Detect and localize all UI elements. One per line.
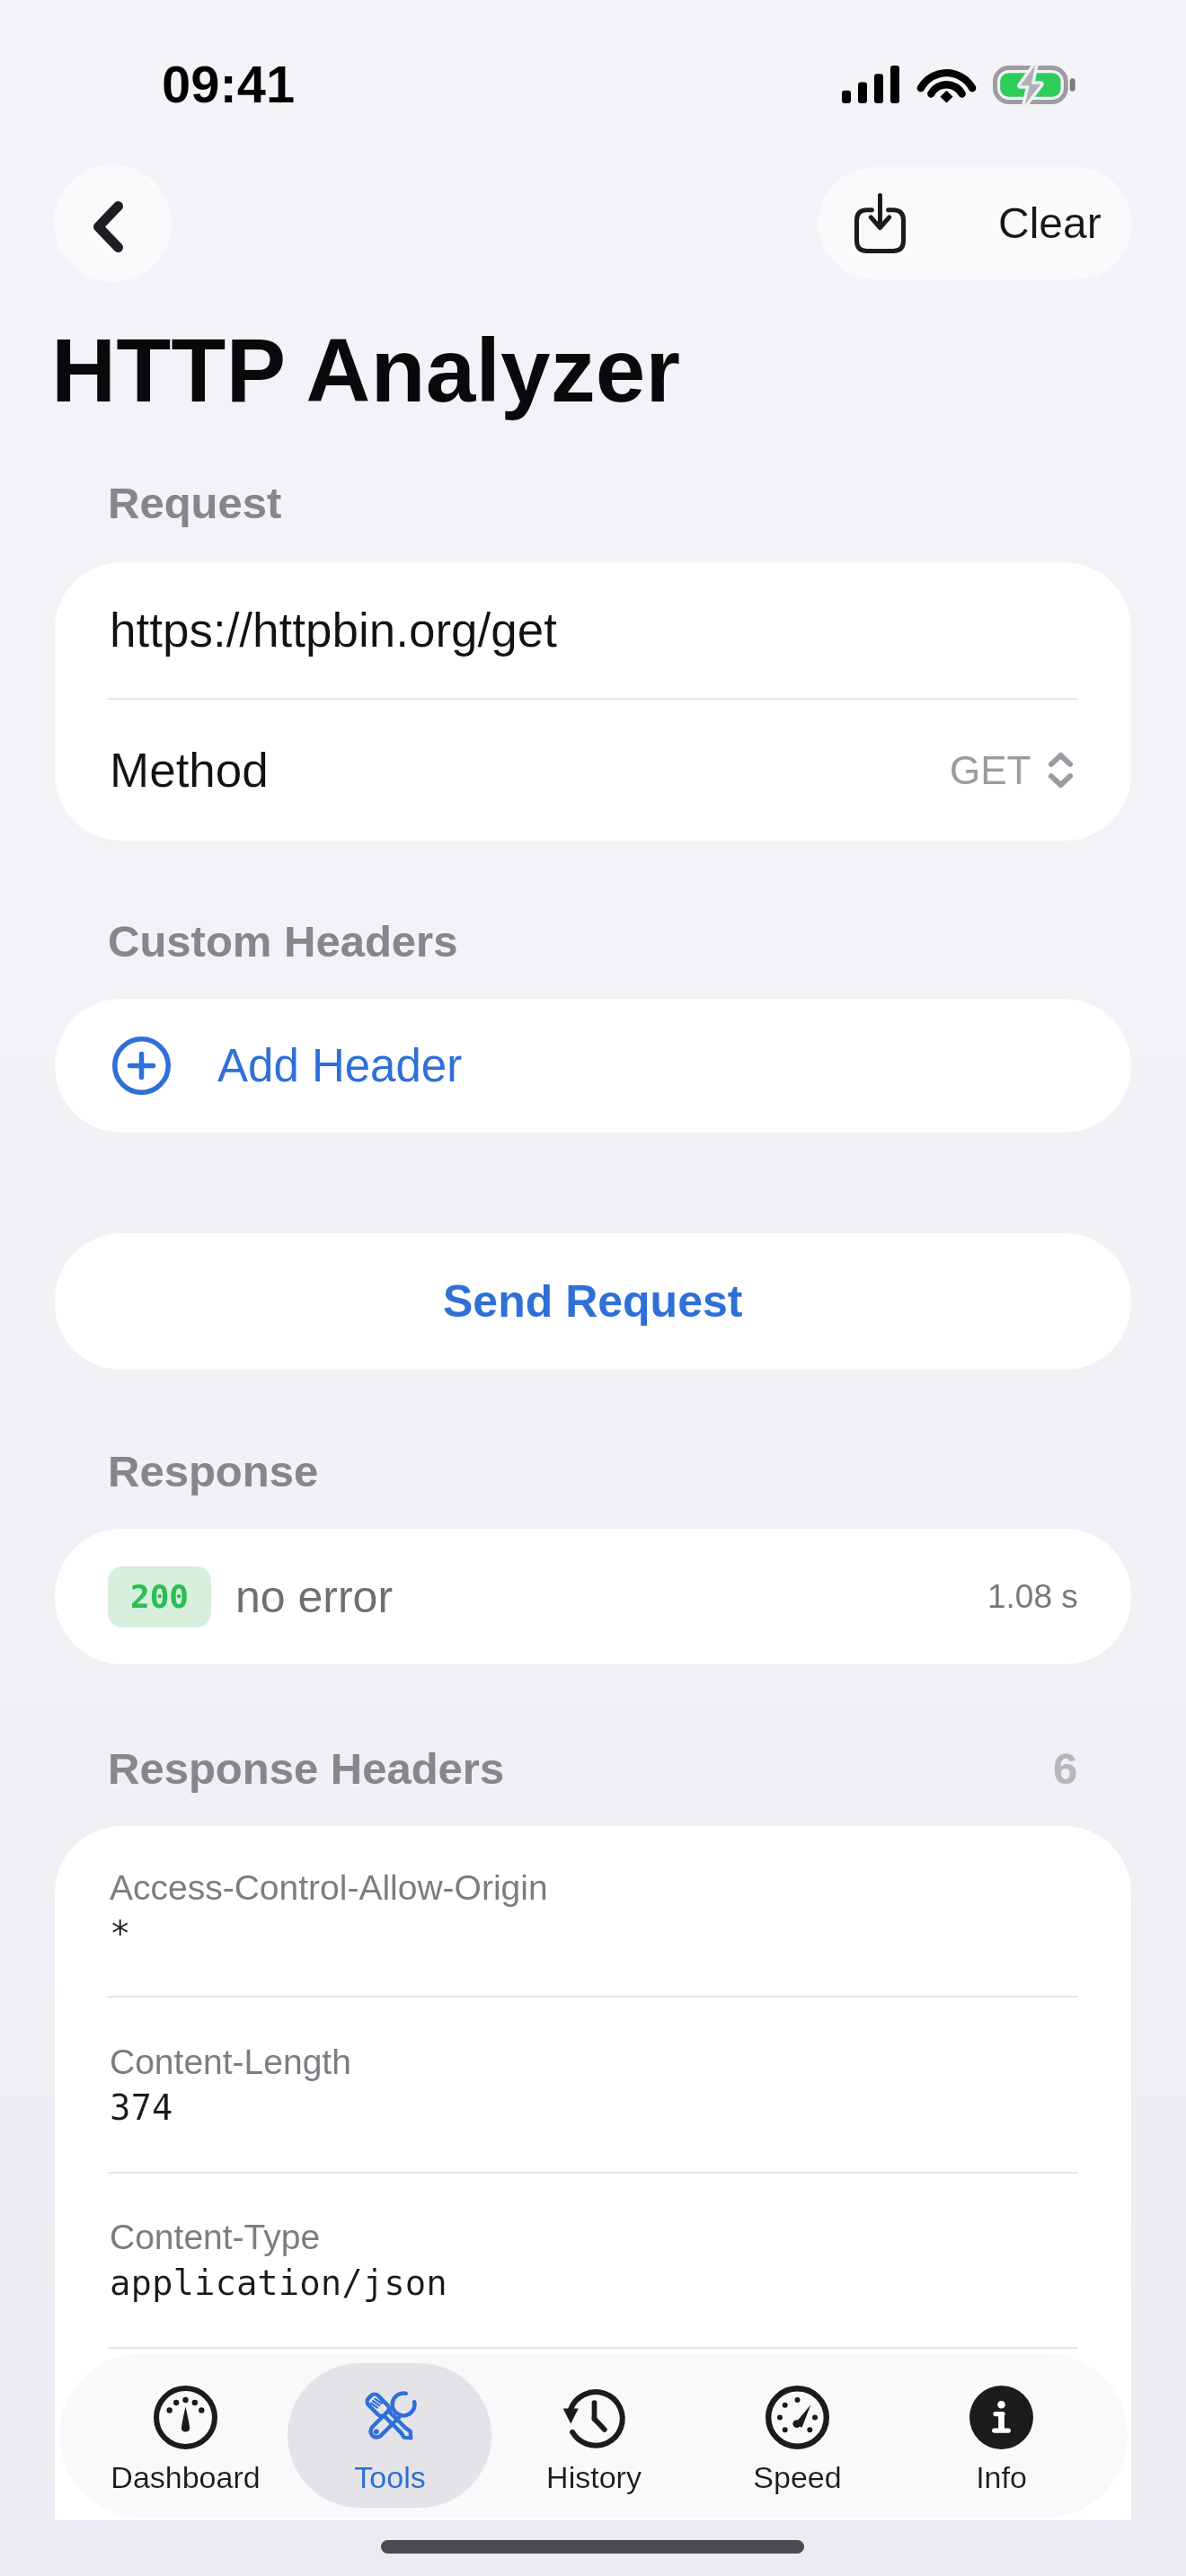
button[interactable]: Clear: [819, 167, 1132, 279]
staticText: Clear: [998, 199, 1102, 248]
staticText: Dashboard: [111, 2460, 261, 2494]
staticText: Custom Headers: [108, 917, 458, 966]
button[interactable]: Back: [54, 164, 172, 282]
staticText: *: [110, 1913, 131, 1954]
button[interactable]: Speed: [695, 2353, 899, 2518]
staticText: Content-Type: [110, 2218, 321, 2257]
staticText: Tools: [354, 2460, 426, 2494]
staticText: Request: [108, 479, 282, 528]
staticText: Date: [110, 2392, 184, 2431]
button[interactable]: Send Request: [55, 1233, 1131, 1370]
button[interactable]: Tools: [288, 2353, 491, 2518]
staticText: 09:41: [162, 55, 296, 113]
staticText: Info: [976, 2460, 1027, 2494]
staticText: HTTP Analyzer: [51, 320, 681, 420]
staticText: Speed: [753, 2460, 842, 2494]
staticText: 1.08 s: [987, 1578, 1078, 1615]
button[interactable]: History: [491, 2353, 695, 2518]
staticText: 6: [1053, 1744, 1078, 1794]
staticText: 200: [130, 1578, 190, 1616]
staticText: Method: [110, 744, 269, 797]
button[interactable]: Add Header: [55, 999, 1131, 1133]
staticText: 374: [110, 2087, 173, 2128]
staticText: https://httpbin.org/get: [110, 604, 557, 657]
staticText: History: [546, 2460, 642, 2494]
staticText: Add Header: [217, 1040, 463, 1091]
staticText: Response: [108, 1447, 319, 1496]
staticText: Content-Length: [110, 2042, 351, 2082]
button[interactable]: Info: [899, 2353, 1103, 2518]
button[interactable]: Dashboard: [84, 2353, 288, 2518]
staticText: GET: [950, 748, 1031, 792]
staticText: Wed, 04 Sep 2024 13:53:51 GMT: [110, 2437, 721, 2477]
staticText: Response Headers: [108, 1744, 505, 1794]
button[interactable]: Method: [55, 700, 1131, 841]
staticText: application/json: [110, 2263, 447, 2303]
staticText: Send Request: [443, 1276, 743, 1327]
staticText: no error: [235, 1572, 394, 1622]
staticText: Access-Control-Allow-Origin: [110, 1868, 548, 1908]
